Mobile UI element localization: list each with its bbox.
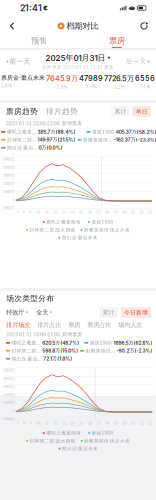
button[interactable]: Back [1, 16, 23, 36]
staticText: 2000万 [3, 392, 15, 397]
staticText: 5000万 [3, 156, 15, 162]
staticText: 0 [13, 408, 15, 413]
staticText: 14 [71, 420, 75, 426]
staticText: 封神第二部:战火西岐 [29, 227, 75, 233]
staticText: 6556 [135, 74, 155, 83]
staticText: 单日 [136, 108, 148, 115]
staticText: 排片场次 [6, 321, 30, 329]
staticText: 13 [62, 420, 66, 426]
staticText: 10 [36, 209, 40, 215]
staticText: 3000万 [3, 173, 15, 178]
staticText: 唐探1900 [92, 430, 114, 436]
button[interactable]: 累计 [111, 106, 130, 117]
staticText: 哪吒之魔童… [12, 339, 41, 346]
staticText: 7726.5万 [104, 74, 134, 83]
staticText: 19 [114, 420, 118, 426]
staticText: 唐探1900 [91, 219, 113, 225]
staticText: 21:41 [20, 3, 42, 13]
staticText: 9 [29, 209, 31, 215]
staticText: 全天 [36, 309, 48, 316]
staticText: 哪吒之魔童闹海 [46, 430, 81, 436]
button[interactable]: 票房占比 [80, 321, 111, 329]
staticText: 1000万 [3, 400, 15, 405]
staticText: 22 [140, 420, 144, 426]
button[interactable]: 票房趋势 [0, 107, 38, 116]
staticText: 17 [96, 209, 100, 215]
button[interactable]: 今日新增 [118, 307, 156, 318]
staticText: 7 [16, 209, 18, 215]
staticText: -1000万 [2, 416, 15, 421]
staticText: 哪吒之魔童闹海 [46, 219, 81, 225]
staticText: 7 [16, 420, 18, 426]
staticText: 14 [70, 209, 74, 215]
staticText: 20 [122, 209, 126, 215]
staticText: -90.2万(-2.3%) [116, 348, 152, 354]
staticText: 5000万 [3, 367, 15, 373]
staticText: 实时更新 2025-01-31 21:41 更新 [42, 64, 114, 70]
staticText: 场次类型分布 [6, 294, 54, 303]
staticText: 1696.5万(62.6%) [113, 340, 152, 346]
staticText: 封神第二部… [7, 136, 36, 143]
staticText: 唐探1900 [92, 128, 114, 135]
staticText: 22 [139, 209, 143, 215]
staticText: 20 [122, 420, 126, 426]
staticText: 唐探1900 [90, 339, 112, 346]
staticText: 16 [88, 209, 92, 215]
staticText: 18 [105, 420, 109, 426]
staticText: 今日新增 [124, 309, 148, 316]
button[interactable]: 票房 [61, 321, 80, 329]
staticText: 2025-01-31 20:00-21:00 新增票房 [6, 331, 82, 337]
staticText: 598.8万(15.0%) [42, 348, 78, 354]
staticText: 票房趋势 [6, 107, 38, 116]
staticText: 熊出没·重启… [7, 144, 37, 151]
button[interactable]: 单日 [130, 106, 156, 117]
staticText: 13 [62, 209, 66, 215]
staticText: 21 [131, 420, 135, 426]
staticText: 72.1万(1.8%) [43, 356, 72, 362]
staticText: 16 [88, 420, 92, 426]
button[interactable]: 排片趋势 [38, 107, 78, 116]
button[interactable]: 2025年01月31日 [42, 50, 114, 73]
staticText: 排片趋势 [46, 107, 78, 116]
button[interactable]: 排片占比 [30, 321, 61, 329]
staticText: 封神第二部:战火西岐 [30, 438, 76, 444]
staticText: 0 [13, 197, 15, 202]
staticText: 后一天 [125, 57, 146, 66]
button[interactable]: 特效厅 [0, 309, 28, 316]
staticText: 405.37万(58.2%) [116, 129, 156, 135]
button[interactable]: 累计 [99, 307, 118, 318]
button[interactable]: Refresh [133, 16, 155, 36]
staticText: 23 [148, 420, 152, 426]
staticText: 620.5万(48.7%) [42, 340, 79, 346]
staticText: 档期对比 [66, 21, 98, 31]
button[interactable]: 预售 [0, 36, 78, 48]
staticText: 排片占比 [37, 321, 61, 329]
button[interactable]: 前一天 [0, 52, 31, 71]
staticText: 18 [105, 209, 109, 215]
staticText: 15 [79, 420, 83, 426]
staticText: 哪吒之魔童… [7, 128, 36, 135]
staticText: 熊出没·重启未来 [62, 234, 98, 241]
staticText: 票房金·重点未来 [1, 74, 45, 81]
button[interactable]: 排片场次 [6, 321, 30, 329]
staticText: -1000万 [2, 205, 15, 210]
staticText: 12 [53, 209, 57, 215]
staticText: 射雕英雄传… [83, 136, 112, 143]
button[interactable]: 票房 [78, 36, 156, 48]
staticText: 5.9% [56, 84, 67, 90]
button[interactable]: 后一天 [125, 52, 156, 71]
staticText: 射雕英雄传… [86, 347, 115, 354]
staticText: 预售 [31, 35, 47, 46]
staticText: 场均人次 [118, 321, 142, 329]
staticText: 15 [79, 209, 83, 215]
staticText: 9 [29, 420, 31, 426]
staticText: 3000万 [3, 384, 15, 389]
staticText: 10 [36, 420, 40, 426]
staticText: 票房 [109, 35, 125, 46]
staticText: 累计 [103, 309, 115, 316]
button[interactable]: 场均人次 [111, 321, 142, 329]
button[interactable]: 全天 [28, 309, 52, 316]
staticText: 7.1% [139, 83, 150, 90]
staticText: -162.37万(-23.3%) [114, 137, 156, 143]
staticText: 前一天 [10, 57, 31, 66]
